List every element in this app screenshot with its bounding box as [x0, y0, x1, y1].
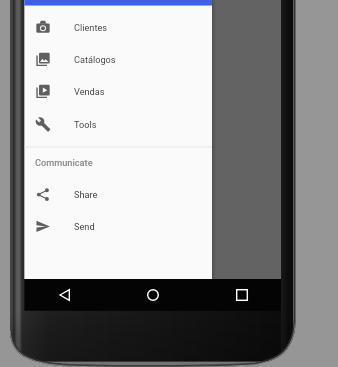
button[interactable]: Back: [50, 280, 80, 310]
staticText: Vendas: [74, 86, 105, 97]
button[interactable]: Catálogos: [24, 43, 212, 75]
button[interactable]: Share: [24, 178, 212, 210]
button[interactable]: Clientes: [24, 11, 212, 43]
staticText: Share: [74, 189, 98, 200]
button[interactable]: Home: [138, 280, 168, 310]
staticText: Send: [74, 221, 95, 232]
staticText: Communicate: [35, 157, 93, 168]
staticText: Tools: [74, 119, 97, 130]
staticText: Catálogos: [74, 54, 116, 65]
button[interactable]: Tools: [24, 108, 212, 140]
button[interactable]: Recent apps: [227, 280, 257, 310]
staticText: Clientes: [74, 22, 108, 33]
button[interactable]: Send: [24, 210, 212, 242]
button[interactable]: Vendas: [24, 75, 212, 107]
